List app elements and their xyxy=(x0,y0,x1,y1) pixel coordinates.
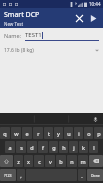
button[interactable]: c xyxy=(34,155,44,167)
button[interactable]: Cancel xyxy=(72,11,86,25)
staticText: u xyxy=(67,130,71,137)
staticText: v xyxy=(49,158,52,165)
staticText: Done xyxy=(91,173,100,178)
staticText: l xyxy=(93,144,95,151)
button[interactable]: l xyxy=(89,141,98,153)
button[interactable]: w xyxy=(11,127,21,139)
button[interactable]: v xyxy=(45,155,55,167)
button[interactable]: g xyxy=(49,141,58,153)
staticText: 10:44 xyxy=(89,1,101,7)
staticText: n xyxy=(70,158,74,165)
staticText: . xyxy=(81,172,83,179)
button[interactable]: Shift xyxy=(0,155,13,167)
staticText: c xyxy=(38,158,41,165)
button[interactable]: o xyxy=(84,127,93,139)
button[interactable]: Start test xyxy=(86,11,100,25)
button[interactable]: b xyxy=(56,155,66,167)
staticText: , xyxy=(20,172,22,179)
staticText: x xyxy=(27,158,30,165)
button[interactable]: j xyxy=(69,141,78,153)
staticText: d xyxy=(30,144,34,151)
staticText: p xyxy=(97,130,101,137)
staticText: e xyxy=(25,130,29,137)
staticText: h xyxy=(62,144,66,151)
button[interactable]: s xyxy=(16,141,26,153)
button[interactable]: TEST1 xyxy=(25,31,99,41)
button[interactable]: x xyxy=(24,155,33,167)
button[interactable]: Voice input xyxy=(91,115,100,124)
staticText: Smart DCP xyxy=(4,10,40,20)
staticText: w xyxy=(14,130,19,137)
button[interactable]: q xyxy=(0,127,10,139)
staticText: g xyxy=(52,144,56,151)
button[interactable]: Done xyxy=(87,169,103,181)
button[interactable]: t xyxy=(44,127,53,139)
button[interactable]: Backspace xyxy=(89,155,103,167)
button[interactable]: u xyxy=(64,127,73,139)
staticText: f xyxy=(42,144,44,151)
button[interactable]: n xyxy=(67,155,77,167)
button[interactable]: p xyxy=(94,127,103,139)
button[interactable]: e xyxy=(22,127,32,139)
staticText: a xyxy=(8,144,12,151)
button[interactable]: h xyxy=(59,141,68,153)
button[interactable]: d xyxy=(27,141,37,153)
staticText: s xyxy=(20,144,23,151)
staticText: b xyxy=(59,158,63,165)
button[interactable]: . xyxy=(78,169,86,181)
button[interactable]: i xyxy=(74,127,83,139)
staticText: z xyxy=(17,158,20,165)
button[interactable]: z xyxy=(14,155,23,167)
button[interactable]: k xyxy=(79,141,88,153)
staticText: i xyxy=(78,130,80,137)
button[interactable]: f xyxy=(38,141,48,153)
staticText: q xyxy=(3,130,7,137)
staticText: t xyxy=(48,130,50,137)
button[interactable]: r xyxy=(33,127,43,139)
staticText: Name: xyxy=(4,32,21,39)
staticText: y xyxy=(57,130,60,137)
button[interactable]: , xyxy=(17,169,25,181)
button[interactable]: ?123 xyxy=(0,169,16,181)
staticText: j xyxy=(73,144,75,151)
staticText: TEST1 xyxy=(25,31,42,39)
staticText: o xyxy=(87,130,91,137)
button[interactable]: 17.6 lb (8 kg) xyxy=(4,47,99,54)
button[interactable]: a xyxy=(5,141,15,153)
staticText: New Test xyxy=(4,21,24,27)
staticText: ?123 xyxy=(4,173,12,178)
button[interactable]: m xyxy=(78,155,88,167)
staticText: k xyxy=(82,144,85,151)
button[interactable]: y xyxy=(54,127,63,139)
staticText: m xyxy=(80,158,86,165)
staticText: 17.6 lb (8 kg) xyxy=(4,47,95,54)
staticText: r xyxy=(37,130,40,137)
